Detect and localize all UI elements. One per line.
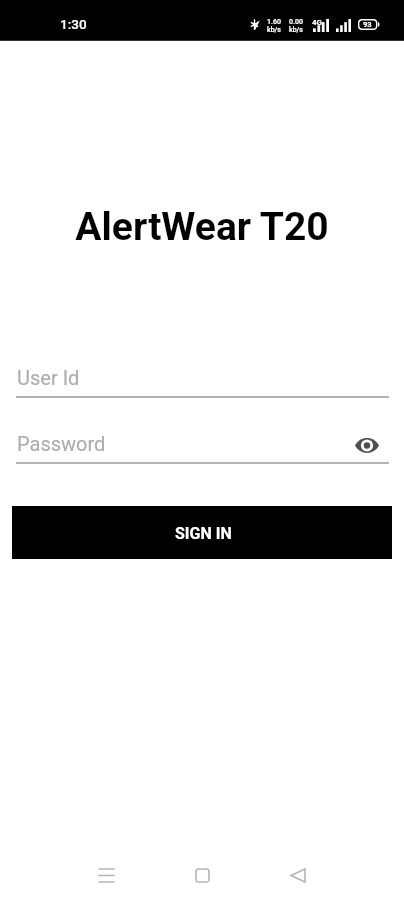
staticText: kb/s xyxy=(289,26,303,34)
staticText: 0.00 xyxy=(289,18,303,26)
button[interactable]: Show password xyxy=(351,430,382,461)
staticText: 93 xyxy=(363,20,372,29)
button[interactable]: Back xyxy=(274,851,322,899)
button[interactable]: User Id xyxy=(16,362,389,398)
staticText: 1.60 xyxy=(267,18,281,26)
staticText: User Id xyxy=(17,366,80,389)
staticText: Password xyxy=(17,432,106,455)
button[interactable]: Recent apps xyxy=(82,851,130,899)
staticText: 4G xyxy=(312,18,323,27)
button[interactable]: Password xyxy=(16,428,389,464)
staticText: SIGN IN xyxy=(175,524,232,543)
staticText: kb/s xyxy=(267,26,281,34)
button[interactable]: Home xyxy=(178,851,226,899)
staticText: 1:30 xyxy=(60,16,87,32)
staticText: AlertWear T20 xyxy=(0,204,404,250)
button[interactable]: SIGN IN xyxy=(12,506,392,559)
